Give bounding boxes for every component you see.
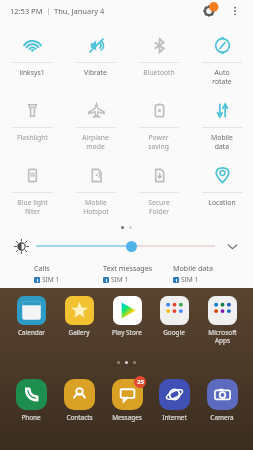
button[interactable]: Gallery (56, 296, 102, 337)
staticText: Gallery (68, 328, 90, 337)
button[interactable]: More options (227, 3, 243, 19)
staticText: Text messages (103, 263, 153, 273)
staticText: SIM 1 (181, 275, 199, 284)
button[interactable]: Internet (151, 379, 197, 422)
staticText: Power saving (148, 133, 169, 151)
staticText: Microsoft Apps (208, 328, 237, 345)
button[interactable]: Mobile Hotspot (64, 156, 127, 221)
button[interactable]: Bluetooth (127, 26, 190, 91)
staticText: Flashlight (17, 133, 48, 142)
button[interactable]: Auto rotate (190, 26, 253, 91)
staticText: Google (163, 328, 185, 337)
button[interactable]: Camera (199, 379, 245, 422)
staticText: Mobile data (211, 133, 233, 151)
button[interactable]: Blue light filter (0, 156, 64, 221)
button[interactable]: Mobile data (173, 259, 243, 288)
button[interactable]: Power saving (127, 91, 190, 156)
button[interactable]: Calendar (8, 296, 54, 337)
staticText: Bluetooth (143, 68, 175, 77)
button[interactable]: Contacts (56, 379, 102, 422)
button[interactable]: Settings (200, 2, 218, 20)
button[interactable]: Vibrate (64, 26, 127, 91)
button[interactable]: Calls (34, 259, 103, 288)
button[interactable]: Mobile data (190, 91, 253, 156)
button[interactable]: Secure Folder (127, 156, 190, 221)
button[interactable]: Play Store (104, 296, 150, 337)
staticText: Blue light filter (17, 198, 48, 216)
staticText: Mobile Hotspot (83, 198, 109, 216)
staticText: Camera (210, 413, 234, 422)
staticText: Phone (21, 413, 41, 422)
button[interactable]: Flashlight (0, 91, 64, 156)
staticText: SIM 1 (111, 275, 129, 284)
staticText: Calendar (18, 328, 45, 337)
button[interactable]: Phone (8, 379, 54, 422)
staticText: Thu, January 4 (54, 6, 105, 16)
button[interactable]: linksys1 (0, 26, 64, 91)
staticText: Calls (34, 263, 50, 273)
button[interactable]: Location (190, 156, 253, 221)
staticText: 12:53 PM (10, 6, 43, 16)
button[interactable]: Google (151, 296, 197, 337)
button[interactable]: Text messages (103, 259, 173, 288)
button[interactable]: Microsoft Apps (199, 296, 245, 345)
staticText: Airplane mode (82, 133, 109, 151)
button[interactable]: Brightness (12, 237, 30, 255)
staticText: Messages (112, 413, 142, 422)
button[interactable]: Expand (223, 237, 241, 255)
staticText: linksys1 (19, 68, 45, 77)
staticText: Play Store (112, 328, 142, 337)
button[interactable]: Airplane mode (64, 91, 127, 156)
staticText: Mobile data (173, 263, 213, 273)
staticText: Internet (162, 413, 187, 422)
staticText: 25 (137, 378, 144, 386)
staticText: Location (208, 198, 236, 207)
staticText: Vibrate (84, 68, 107, 77)
staticText: Contacts (66, 413, 93, 422)
staticText: Secure Folder (148, 198, 170, 216)
staticText: Auto rotate (212, 68, 232, 86)
staticText: SIM 1 (42, 275, 60, 284)
button[interactable]: 25 (104, 379, 150, 422)
button[interactable] (36, 236, 215, 256)
